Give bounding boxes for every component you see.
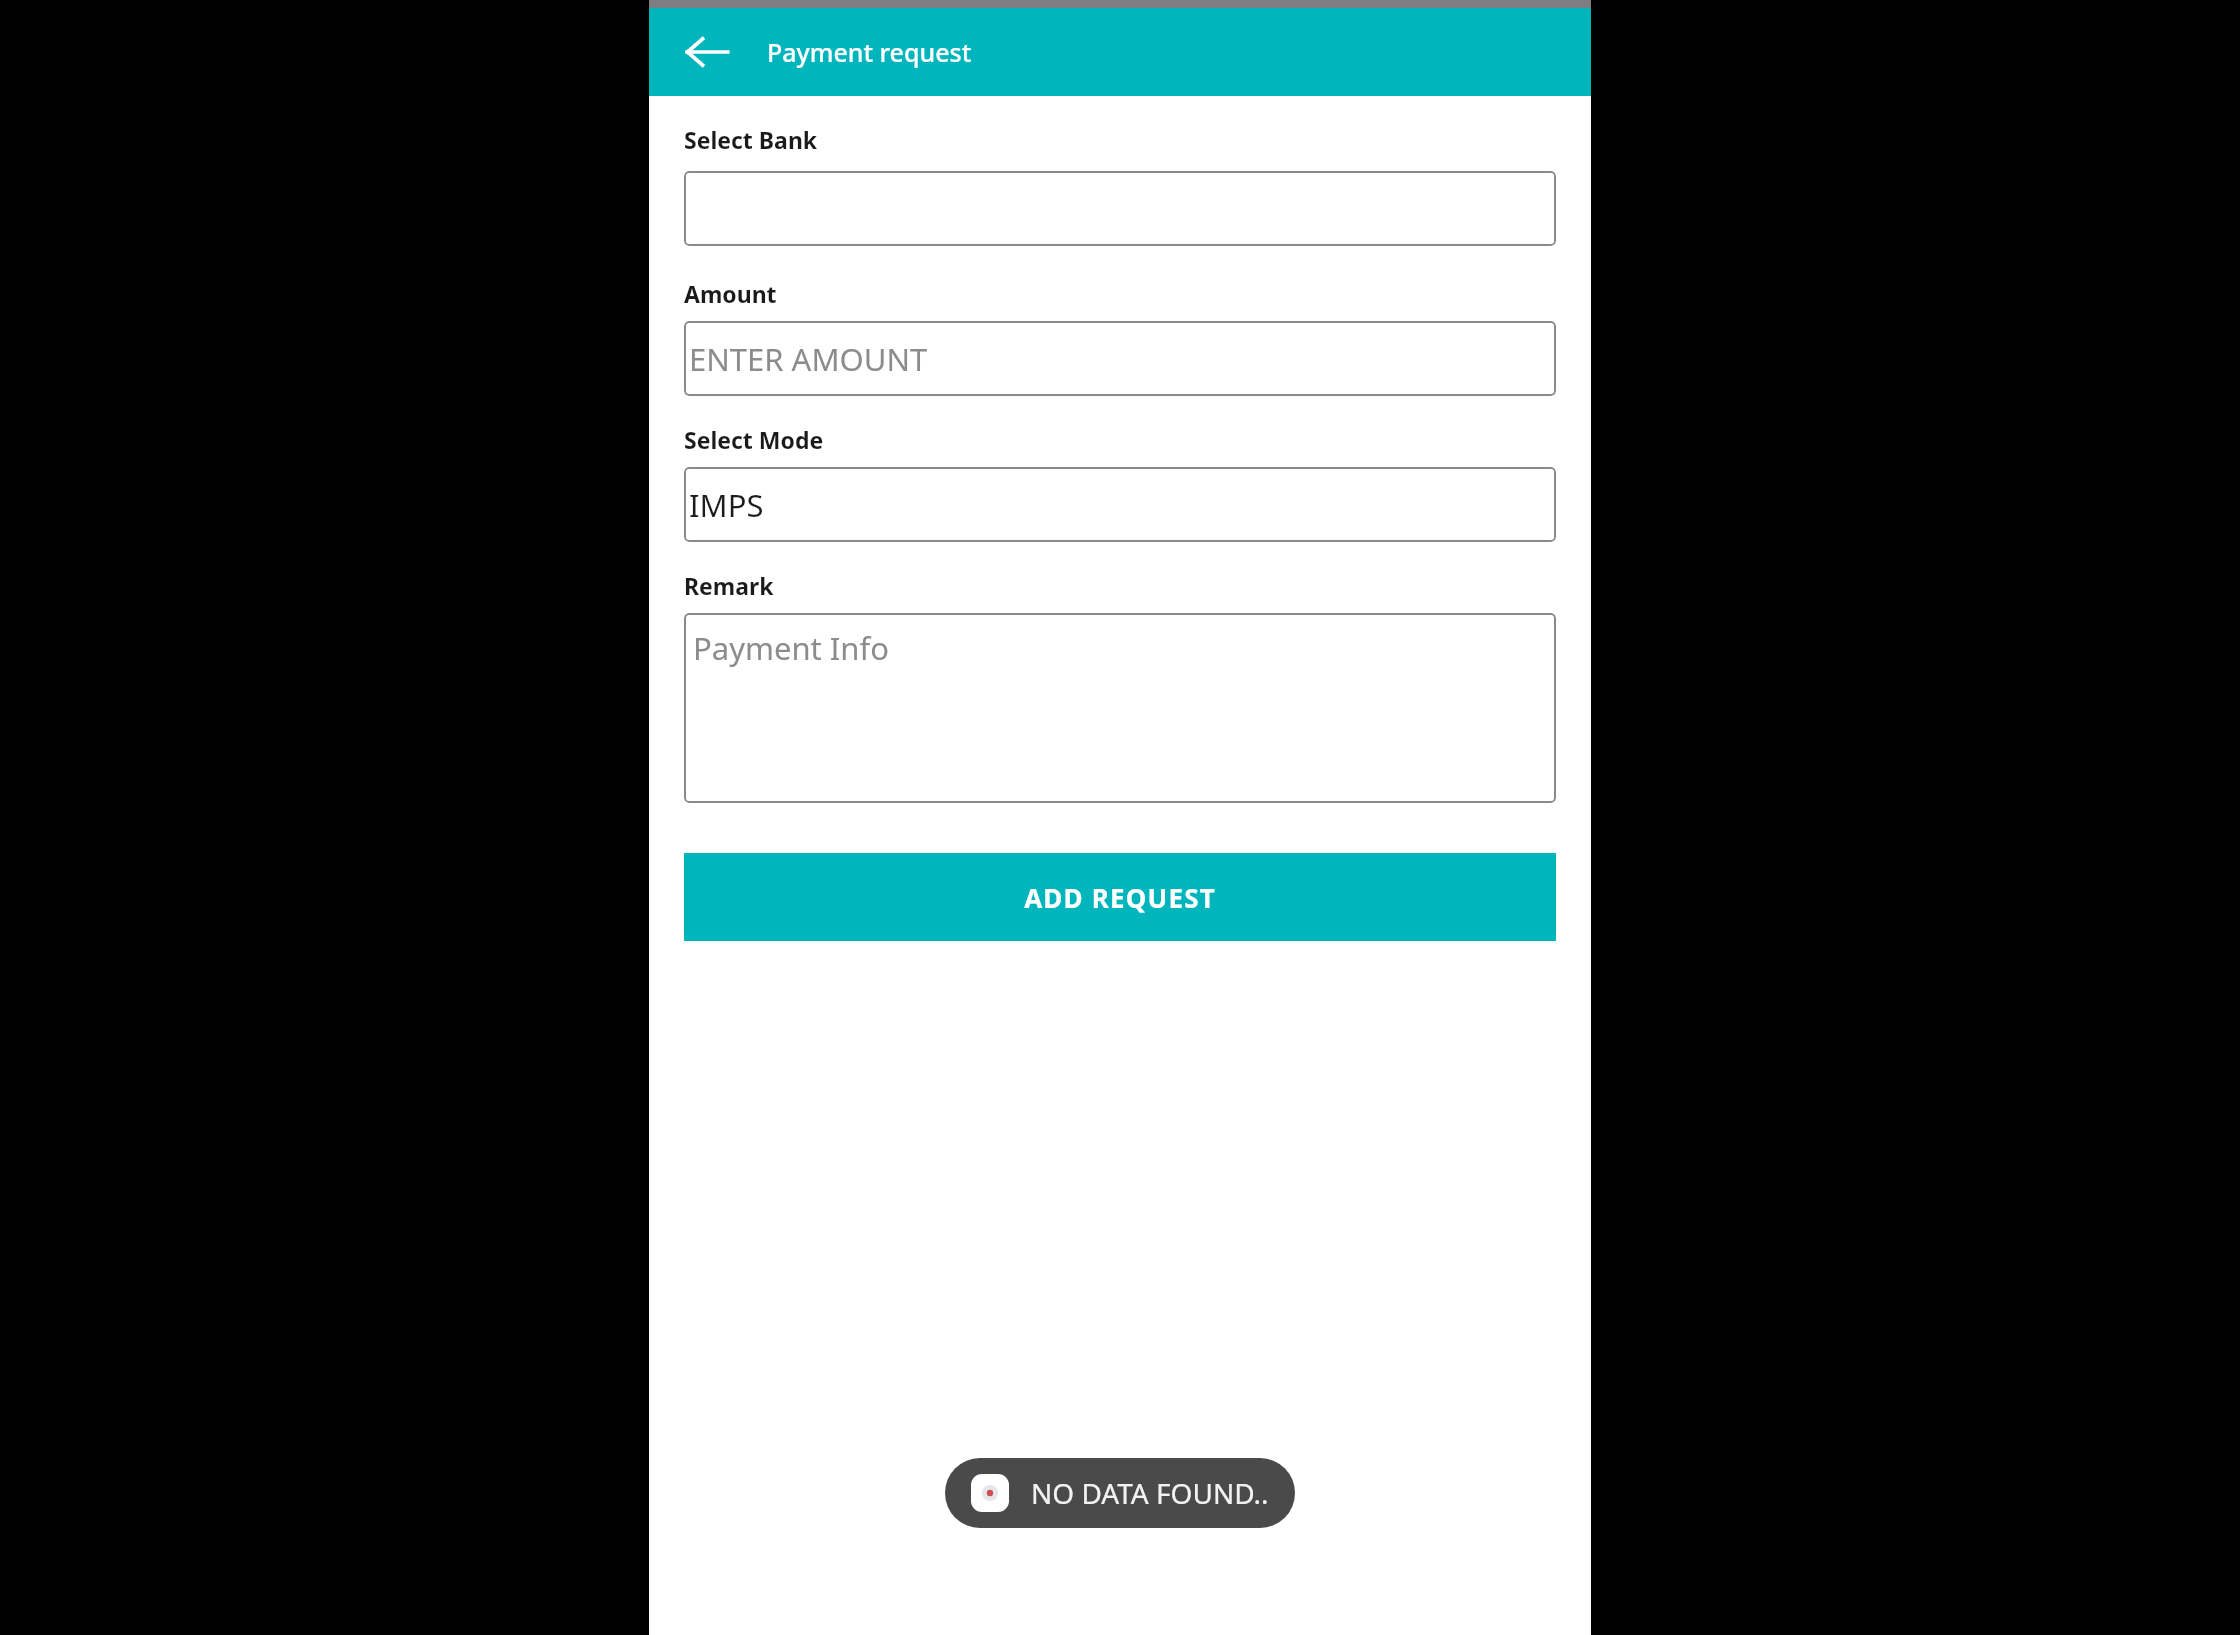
staticText: ADD REQUEST <box>1024 880 1216 915</box>
staticText: Payment request <box>767 35 972 69</box>
button[interactable]: Select Bank <box>684 171 1556 246</box>
staticText: Select Mode <box>684 424 824 455</box>
button[interactable]: ADD REQUEST <box>684 853 1556 941</box>
staticText: Amount <box>684 278 777 309</box>
staticText: NO DATA FOUND.. <box>1031 1474 1269 1512</box>
staticText: IMPS <box>689 484 764 526</box>
staticText: ENTER AMOUNT <box>689 338 928 380</box>
button[interactable]: Select Mode <box>684 467 1556 542</box>
button[interactable]: Remark <box>684 613 1556 803</box>
staticText: Select Bank <box>684 124 818 155</box>
staticText: Remark <box>684 570 774 601</box>
button[interactable]: Amount <box>684 321 1556 396</box>
staticText: Payment Info <box>693 627 889 669</box>
button[interactable]: Back <box>679 24 735 80</box>
